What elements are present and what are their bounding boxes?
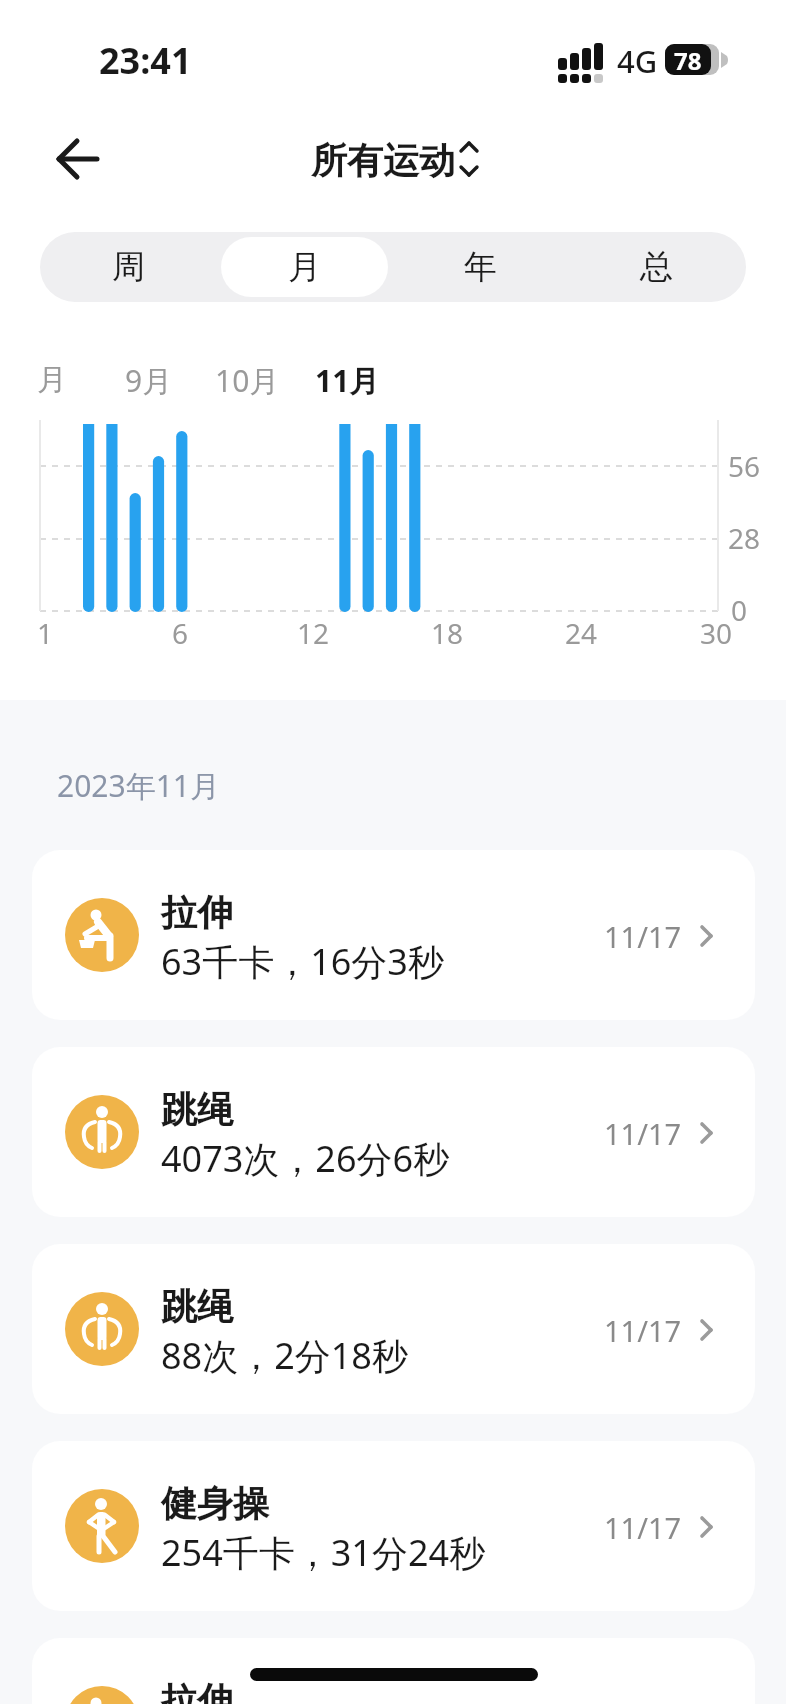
- button[interactable]: 拉伸: [32, 1638, 755, 1704]
- staticText: 18: [431, 614, 464, 652]
- staticText: 9月: [125, 360, 173, 401]
- staticText: 0: [731, 591, 748, 629]
- staticText: 6: [172, 614, 189, 652]
- staticText: 11/17: [604, 1311, 682, 1350]
- button[interactable]: 月: [216, 232, 392, 302]
- staticText: 78: [674, 44, 702, 75]
- staticText: 30: [700, 614, 733, 652]
- button[interactable]: 年: [392, 232, 568, 302]
- button[interactable]: 总: [568, 232, 744, 302]
- staticText: 88次，2分18秒: [161, 1331, 408, 1380]
- staticText: 周: [112, 246, 145, 288]
- staticText: 11/17: [604, 1508, 682, 1547]
- staticText: 28: [728, 519, 761, 557]
- button[interactable]: 跳绳: [32, 1244, 755, 1414]
- staticText: 63千卡，16分3秒: [161, 937, 444, 986]
- staticText: 10月: [215, 360, 280, 401]
- staticText: 11/17: [604, 917, 682, 956]
- staticText: 拉伸: [161, 1678, 233, 1704]
- staticText: 11/17: [604, 1114, 682, 1153]
- staticText: 跳绳: [161, 1087, 233, 1132]
- staticText: 总: [640, 246, 673, 288]
- button[interactable]: [45, 130, 109, 190]
- button[interactable]: 周: [40, 232, 216, 302]
- button[interactable]: 健身操: [32, 1441, 755, 1611]
- staticText: 拉伸: [161, 890, 233, 935]
- staticText: 11月: [315, 360, 380, 401]
- staticText: 56: [728, 447, 761, 485]
- staticText: 2023年11月: [57, 765, 220, 806]
- staticText: 4073次，26分6秒: [161, 1134, 450, 1183]
- staticText: 4G: [617, 40, 658, 82]
- button[interactable]: 拉伸: [32, 850, 755, 1020]
- staticText: 跳绳: [161, 1284, 233, 1329]
- staticText: 所有运动: [311, 138, 455, 183]
- staticText: 254千卡，31分24秒: [161, 1528, 486, 1577]
- staticText: 1: [37, 614, 54, 652]
- staticText: 月: [288, 246, 321, 288]
- staticText: 月: [37, 361, 67, 399]
- staticText: 健身操: [161, 1481, 269, 1526]
- button[interactable]: [280, 130, 510, 190]
- button[interactable]: 跳绳: [32, 1047, 755, 1217]
- staticText: 12: [297, 614, 330, 652]
- staticText: 24: [565, 614, 598, 652]
- staticText: 23:41: [99, 36, 192, 85]
- staticText: 年: [464, 246, 497, 288]
